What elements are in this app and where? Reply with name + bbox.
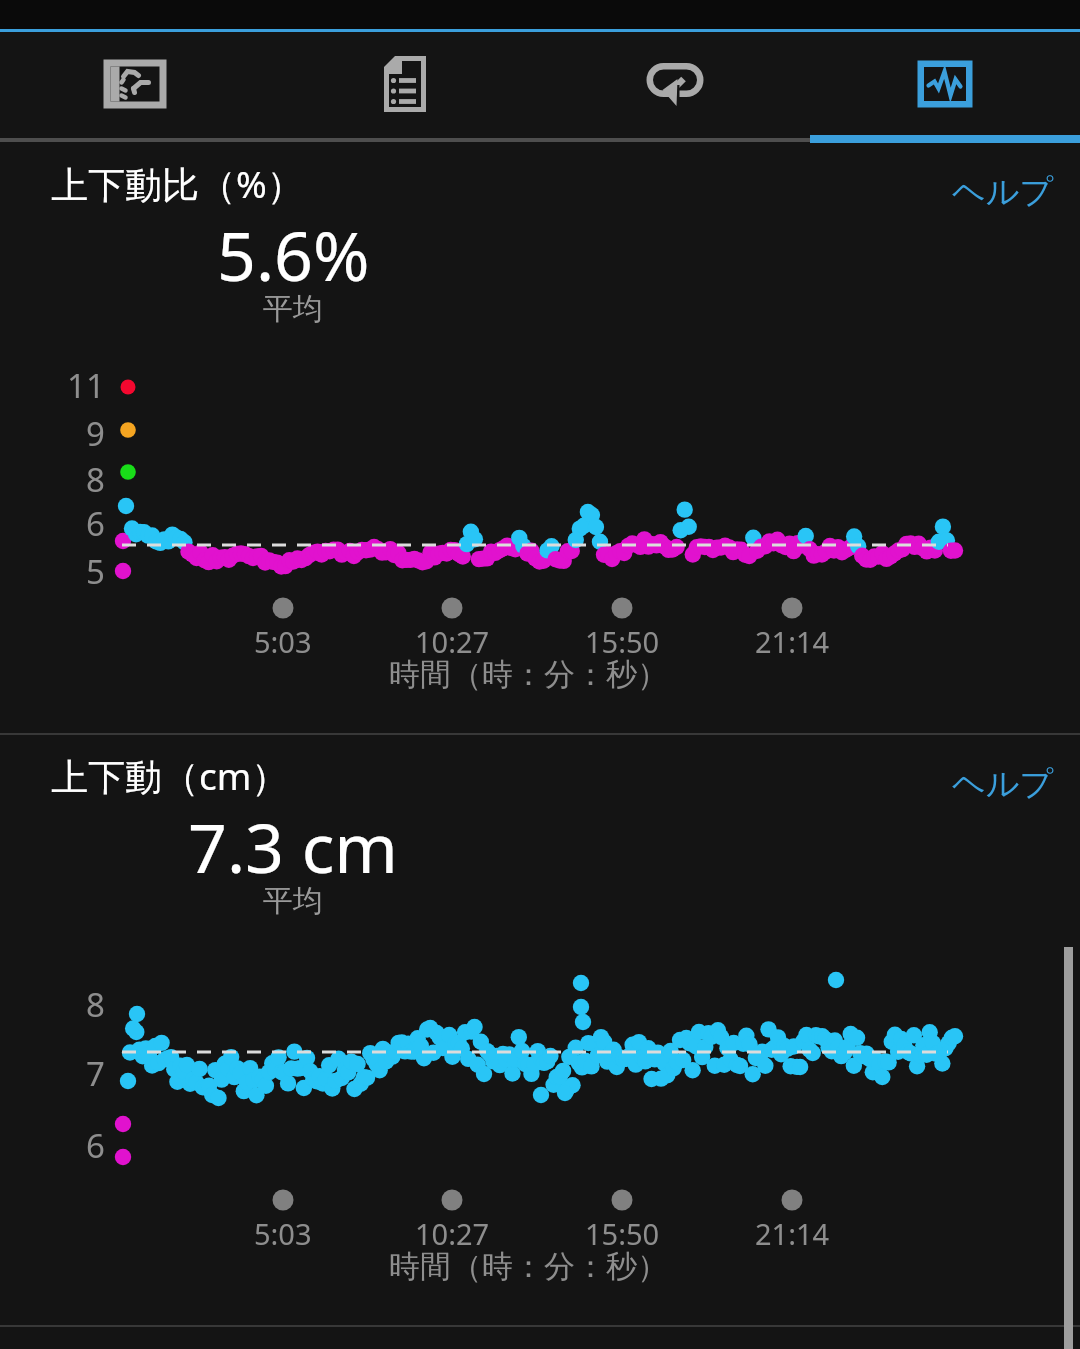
staticText: ヘルプ (952, 171, 1054, 213)
staticText: 6 (86, 501, 105, 546)
staticText: 時間（時：分：秒） (389, 655, 668, 694)
staticText: 時間（時：分：秒） (389, 1247, 668, 1286)
button[interactable]: ヘルプ (952, 171, 1054, 213)
staticText: 11 (67, 363, 105, 408)
staticText: 上下動比（%） (51, 158, 304, 209)
button[interactable]: ヘルプ (952, 763, 1054, 805)
staticText: 15:50 (585, 622, 660, 661)
staticText: 10:27 (415, 622, 490, 661)
button[interactable]: Details (270, 32, 540, 135)
staticText: 8 (86, 457, 105, 502)
staticText: 7 (86, 1051, 105, 1096)
staticText: 5 (86, 549, 105, 594)
staticText: 5:03 (254, 622, 312, 661)
staticText: 平均 (263, 290, 323, 328)
staticText: 21:14 (755, 622, 830, 661)
button[interactable]: Charts (810, 32, 1080, 135)
button[interactable]: Map (0, 32, 270, 135)
staticText: 21:14 (755, 1214, 830, 1253)
staticText: 7.3 cm (188, 800, 398, 893)
button[interactable]: Laps (540, 32, 810, 135)
staticText: ヘルプ (952, 763, 1054, 805)
staticText: 8 (86, 982, 105, 1027)
staticText: 10:27 (415, 1214, 490, 1253)
staticText: 5:03 (254, 1214, 312, 1253)
staticText: 平均 (263, 882, 323, 920)
staticText: 6 (86, 1123, 105, 1168)
staticText: 15:50 (585, 1214, 660, 1253)
staticText: 5.6% (217, 208, 370, 301)
staticText: 上下動（cm） (51, 750, 289, 801)
staticText: 9 (86, 411, 105, 456)
